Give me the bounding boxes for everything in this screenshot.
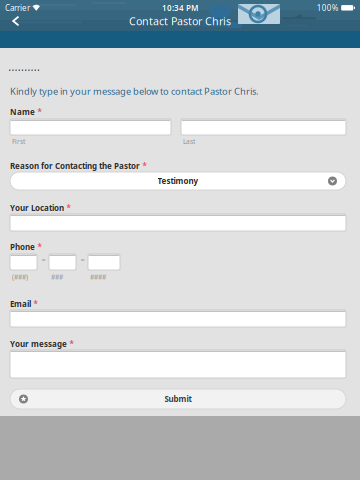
staticText: * <box>37 106 41 117</box>
staticText: 10:34 PM <box>162 2 198 13</box>
staticText: Your Location <box>10 202 64 213</box>
staticText: * <box>69 338 73 349</box>
staticText: 100% <box>317 2 339 13</box>
staticText: Kindly type in your message below to con… <box>10 85 259 97</box>
staticText: Reason for Contacting the Pastor <box>10 160 140 171</box>
staticText: ### <box>51 272 63 281</box>
staticText: Last <box>183 137 195 146</box>
staticText: Testimony <box>157 176 198 186</box>
staticText: Name <box>10 106 35 117</box>
staticText: * <box>33 298 37 309</box>
staticText: Contact Pastor Chris <box>129 14 231 28</box>
staticText: Carrier <box>5 2 30 13</box>
staticText: #### <box>90 272 106 281</box>
button[interactable]: Testimony <box>10 172 346 190</box>
staticText: (###) <box>12 272 28 281</box>
staticText: Your message <box>10 338 67 349</box>
button[interactable]: Submit <box>10 389 346 409</box>
staticText: Submit <box>164 394 191 404</box>
staticText: Phone <box>10 241 35 252</box>
staticText: * <box>66 202 70 213</box>
staticText: First <box>12 137 25 146</box>
staticText: * <box>37 241 41 252</box>
staticText: Email <box>10 298 31 309</box>
staticText: * <box>142 160 146 171</box>
button[interactable]: Back <box>6 14 26 28</box>
